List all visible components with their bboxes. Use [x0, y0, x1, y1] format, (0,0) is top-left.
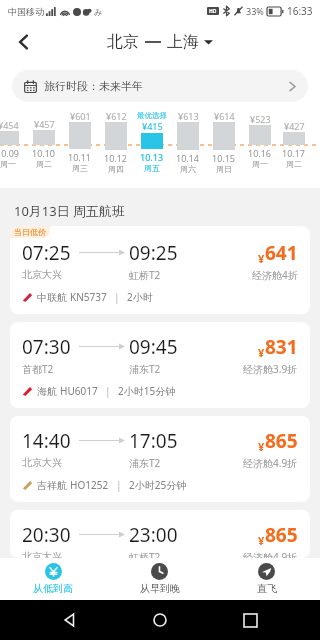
- staticText: 10.17: [282, 147, 306, 159]
- button[interactable]: ¥523: [242, 110, 278, 188]
- button[interactable]: ¥454: [0, 110, 26, 188]
- staticText: 10.09: [0, 147, 20, 159]
- staticText: 中联航: [37, 291, 67, 304]
- staticText: 10.16: [248, 147, 272, 159]
- staticText: ¥: [258, 533, 265, 548]
- staticText: ¥427: [284, 120, 305, 132]
- staticText: 当日低价: [14, 227, 46, 237]
- button[interactable]: 20:30: [10, 510, 310, 558]
- button[interactable]: 当日低价: [10, 226, 310, 314]
- staticText: 23:00: [129, 522, 178, 548]
- staticText: 周日: [216, 164, 232, 174]
- staticText: 33%: [246, 5, 264, 17]
- staticText: 10.12: [104, 152, 128, 164]
- button[interactable]: 北京: [107, 32, 213, 52]
- button[interactable]: 最优选择: [134, 110, 170, 188]
- staticText: 14:40: [22, 428, 71, 454]
- staticText: 10.10: [32, 147, 56, 159]
- staticText: 未来半年: [99, 79, 143, 93]
- staticText: 09:45: [129, 334, 178, 360]
- staticText: 北京: [107, 32, 139, 52]
- staticText: 10.11: [68, 151, 92, 163]
- button[interactable]: ¥613: [170, 110, 206, 188]
- button[interactable]: Back: [50, 600, 90, 640]
- staticText: 周六: [180, 164, 196, 174]
- staticText: ¥415: [142, 120, 163, 132]
- staticText: 浦东T2: [129, 362, 161, 376]
- staticText: 2小时: [127, 290, 153, 304]
- staticText: ¥601: [70, 110, 91, 122]
- button[interactable]: 从早到晚: [106, 558, 213, 600]
- staticText: 北京大兴: [22, 550, 62, 558]
- staticText: 865: [265, 522, 298, 548]
- staticText: 831: [265, 334, 298, 360]
- staticText: 经济舱4折: [252, 268, 298, 282]
- staticText: 641: [265, 240, 298, 266]
- staticText: 10月13日 周五航班: [14, 202, 126, 220]
- staticText: 从早到晚: [140, 582, 180, 595]
- staticText: 经济舱4.9折: [243, 550, 298, 558]
- staticText: |: [116, 478, 122, 492]
- staticText: 周一: [0, 159, 16, 169]
- staticText: ¥: [258, 345, 265, 360]
- staticText: 07:30: [22, 334, 71, 360]
- button[interactable]: Recent apps: [230, 600, 270, 640]
- staticText: ¥613: [178, 110, 199, 122]
- button[interactable]: ¥457: [26, 110, 62, 188]
- button[interactable]: ¥427: [278, 110, 310, 188]
- staticText: 首都T2: [22, 362, 54, 376]
- button[interactable]: 从低到高: [0, 558, 106, 600]
- staticText: 上海: [167, 32, 199, 52]
- staticText: 旅行时段：: [44, 79, 99, 93]
- staticText: ¥: [258, 251, 265, 266]
- staticText: 北京大兴: [22, 268, 62, 281]
- button[interactable]: ¥612: [98, 110, 134, 188]
- button[interactable]: 07:30: [10, 322, 310, 408]
- staticText: ¥: [258, 439, 265, 454]
- staticText: ¥523: [250, 113, 271, 125]
- staticText: み: [94, 7, 103, 17]
- staticText: 中国移动: [8, 6, 44, 17]
- staticText: 北京大兴: [22, 456, 62, 469]
- staticText: 最优选择: [137, 111, 167, 120]
- staticText: 10.14: [176, 152, 200, 164]
- staticText: 经济舱4.9折: [243, 456, 298, 470]
- staticText: 16:33: [287, 4, 313, 18]
- button[interactable]: 旅行时段：: [12, 70, 308, 102]
- staticText: 10.15: [212, 152, 236, 164]
- staticText: 07:25: [22, 240, 71, 266]
- staticText: HO1252: [70, 478, 109, 492]
- staticText: |: [105, 384, 111, 398]
- staticText: 17:05: [129, 428, 178, 454]
- staticText: 直飞: [257, 582, 277, 595]
- staticText: 09:25: [129, 240, 178, 266]
- staticText: 2小时15分钟: [118, 384, 176, 398]
- staticText: HD: [209, 8, 217, 15]
- staticText: KN5737: [70, 290, 107, 304]
- staticText: 周五: [144, 163, 160, 173]
- staticText: 虹桥T2: [129, 550, 161, 558]
- staticText: 2小时25分钟: [129, 478, 187, 492]
- staticText: 周三: [72, 163, 88, 173]
- staticText: ¥614: [214, 110, 235, 122]
- staticText: 从低到高: [33, 582, 73, 595]
- staticText: ¥454: [0, 119, 19, 131]
- staticText: ¥457: [34, 118, 55, 130]
- staticText: ¥612: [106, 110, 127, 122]
- button[interactable]: ¥601: [62, 110, 98, 188]
- staticText: 虹桥T2: [129, 268, 161, 282]
- staticText: 周四: [108, 164, 124, 174]
- staticText: 865: [265, 428, 298, 454]
- staticText: 周二: [286, 159, 302, 169]
- staticText: 吉祥航: [37, 479, 67, 492]
- button[interactable]: 14:40: [10, 416, 310, 502]
- staticText: 10.13: [140, 151, 164, 163]
- staticText: 20:30: [22, 522, 71, 548]
- button[interactable]: Back: [4, 22, 44, 62]
- staticText: 浦东T2: [129, 456, 161, 470]
- staticText: 周一: [252, 159, 268, 169]
- button[interactable]: ¥614: [206, 110, 242, 188]
- staticText: 海航: [37, 385, 57, 398]
- button[interactable]: Home: [140, 600, 180, 640]
- button[interactable]: 直飞: [213, 558, 320, 600]
